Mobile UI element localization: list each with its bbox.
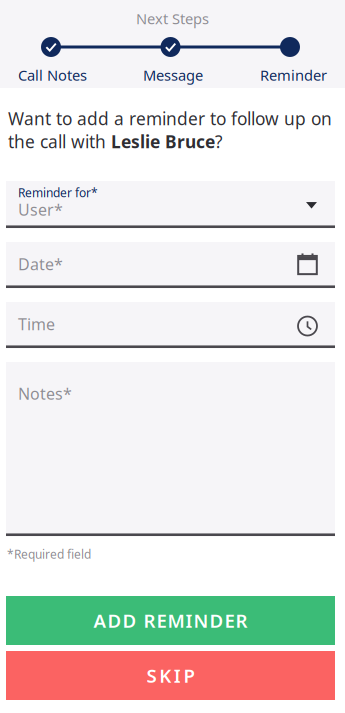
staticText: Next Steps: [136, 9, 209, 28]
button[interactable]: SKIP: [6, 651, 335, 700]
staticText: SKIP: [147, 663, 194, 688]
staticText: Date*: [18, 253, 63, 275]
staticText: Call Notes: [18, 65, 87, 85]
button[interactable]: ADD REMINDER: [6, 596, 335, 645]
staticText: Notes*: [18, 383, 72, 404]
staticText: Message: [143, 65, 203, 85]
staticText: ADD REMINDER: [93, 608, 247, 633]
staticText: Reminder: [260, 65, 327, 85]
staticText: *Required field: [7, 546, 91, 562]
staticText: Reminder for*: [18, 185, 98, 200]
staticText: User*: [18, 199, 63, 220]
staticText: Time: [18, 313, 55, 335]
staticText: Want to add a reminder to follow up on t…: [8, 107, 332, 153]
